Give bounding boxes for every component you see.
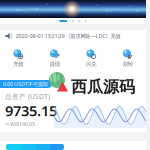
button[interactable]: 充值: [0, 49, 36, 67]
staticText: 9735.15: [5, 101, 57, 120]
staticText: 2020-08-01 13:21:29 《富济网际—LDC》充值: [16, 32, 121, 40]
staticText: 充值: [13, 61, 23, 67]
staticText: 闪兑: [86, 61, 96, 67]
staticText: 划转: [123, 61, 133, 67]
staticText: 提现: [50, 61, 60, 67]
staticText: ≈ ¥68146.05: [5, 120, 35, 127]
staticText: 总资产 (USDT): [5, 92, 50, 101]
button[interactable]: 划转: [109, 49, 146, 67]
button[interactable]: 提现: [36, 49, 73, 67]
staticText: 0.00 USDT不可提取: [3, 80, 48, 87]
staticText: 西瓜源码: [71, 77, 135, 97]
button[interactable]: 闪兑: [73, 49, 109, 67]
